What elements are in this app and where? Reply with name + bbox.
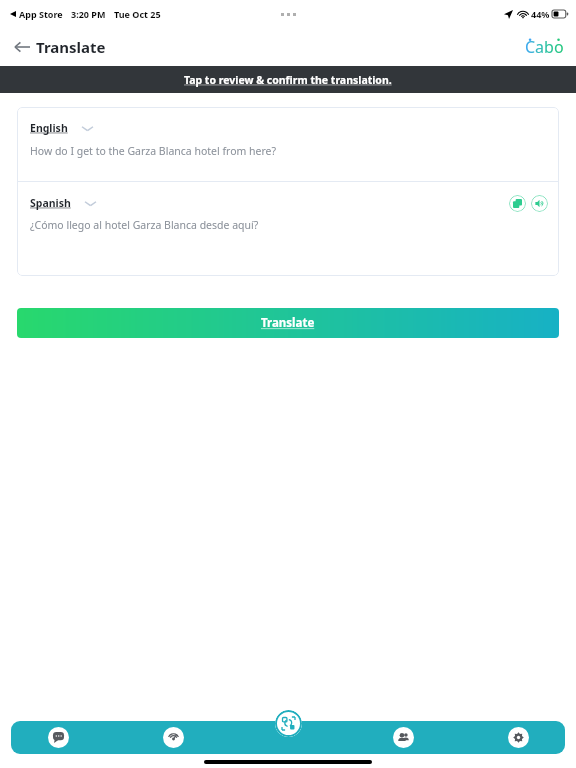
button[interactable]: Nearby (116, 721, 231, 754)
button[interactable]: Copy translation (509, 195, 526, 212)
button[interactable]: Play translation audio (531, 195, 548, 212)
staticText: Translate (36, 37, 106, 57)
button[interactable]: Chat (0, 721, 116, 754)
staticText: ¿Cómo llego al hotel Garza Blanca desde … (30, 218, 259, 232)
staticText: Cabo (525, 36, 564, 58)
staticText: Spanish (30, 196, 71, 210)
staticText: Tap to review & confirm the translation. (184, 73, 392, 87)
staticText: How do I get to the Garza Blanca hotel f… (30, 144, 277, 158)
staticText: 3:20 PM (71, 8, 106, 20)
staticText: Tue Oct 25 (114, 8, 161, 20)
button[interactable]: Change target language (81, 194, 99, 212)
staticText: 44% (531, 8, 550, 20)
button[interactable]: Back (5, 30, 39, 64)
button[interactable]: Translate (275, 710, 302, 737)
button[interactable]: Spanish (30, 196, 71, 210)
button[interactable]: Cabo (525, 36, 564, 58)
staticText: App Store (19, 8, 63, 20)
button[interactable]: English (30, 121, 68, 135)
button[interactable]: Translate (17, 308, 559, 338)
button[interactable]: Change source language (78, 119, 96, 137)
button[interactable]: Settings (461, 721, 576, 754)
button[interactable]: Tap to review & confirm the translation. (0, 66, 576, 93)
staticText: Translate (261, 315, 315, 331)
button[interactable]: Groups (346, 721, 461, 754)
staticText: English (30, 121, 68, 135)
